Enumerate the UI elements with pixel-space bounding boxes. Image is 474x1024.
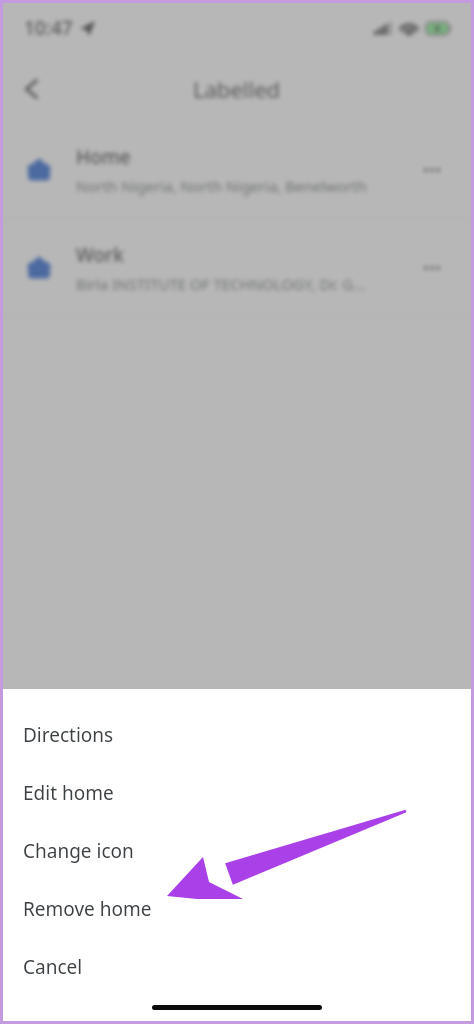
staticText: Home xyxy=(76,144,131,170)
staticText: Birla INSTITUTE OF TECHNOLOGY, Dr. G... xyxy=(76,274,366,294)
button[interactable]: Cancel xyxy=(0,938,474,996)
staticText: North Nigeria, North Nigeria, Benelworth xyxy=(76,176,367,196)
button[interactable]: Edit home xyxy=(0,764,474,822)
staticText: Change icon xyxy=(23,838,134,864)
staticText: Edit home xyxy=(23,780,114,806)
button[interactable]: More options xyxy=(412,248,452,288)
button[interactable]: More options xyxy=(412,150,452,190)
staticText: 10:47 xyxy=(24,15,73,41)
button[interactable]: Back xyxy=(10,67,54,111)
button[interactable]: Work xyxy=(0,219,474,316)
button[interactable]: Home xyxy=(0,121,474,218)
staticText: Work xyxy=(76,242,124,268)
button[interactable]: Remove home xyxy=(0,880,474,938)
button[interactable]: Change icon xyxy=(0,822,474,880)
staticText: Directions xyxy=(23,722,114,748)
staticText: Remove home xyxy=(23,896,152,922)
staticText: Cancel xyxy=(23,954,83,980)
staticText: Labelled xyxy=(193,74,281,104)
button[interactable]: Directions xyxy=(0,706,474,764)
